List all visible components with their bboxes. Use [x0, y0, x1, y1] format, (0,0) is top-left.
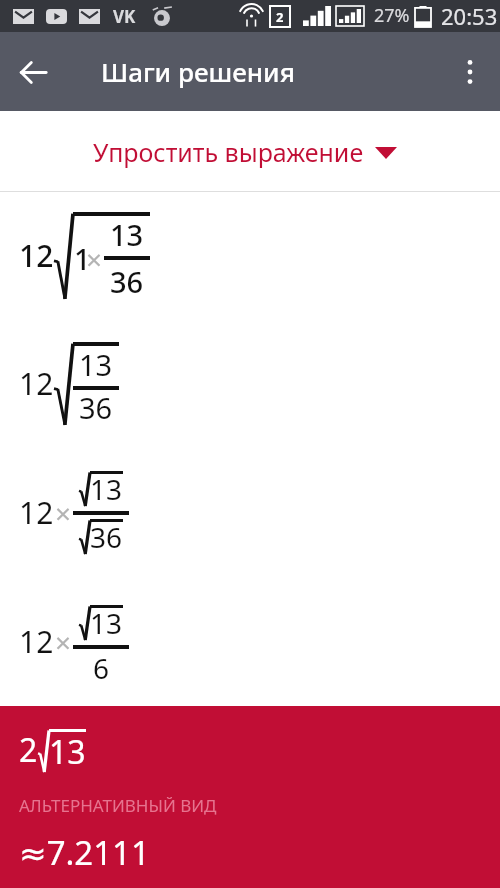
staticText: 13: [110, 215, 144, 254]
staticText: Упростить выражение: [93, 135, 364, 169]
staticText: 27%: [374, 3, 410, 28]
button[interactable]: 12: [0, 448, 500, 577]
staticText: 36: [110, 262, 144, 301]
button[interactable]: Упростить выражение: [0, 111, 500, 192]
button[interactable]: More options: [446, 48, 494, 96]
staticText: ≈7.2111: [19, 830, 150, 875]
staticText: 2: [276, 8, 284, 26]
staticText: Шаги решения: [101, 54, 295, 89]
staticText: ×: [55, 623, 72, 661]
staticText: 36: [79, 388, 113, 427]
button[interactable]: Back: [9, 48, 57, 96]
staticText: 12: [19, 621, 54, 662]
staticText: ×: [55, 494, 72, 532]
staticText: 2: [19, 728, 38, 772]
staticText: 36: [90, 518, 123, 556]
staticText: 12: [19, 363, 54, 404]
staticText: АЛЬТЕРНАТИВНЫЙ ВИД: [19, 794, 217, 817]
staticText: 12: [19, 235, 54, 276]
staticText: 13: [79, 345, 113, 384]
staticText: ×: [86, 240, 103, 278]
staticText: 6: [93, 649, 110, 687]
staticText: 1: [74, 239, 91, 278]
staticText: 20:53: [441, 1, 498, 31]
staticText: 13: [90, 470, 123, 508]
staticText: 13: [90, 604, 123, 642]
button[interactable]: 12: [0, 577, 500, 706]
button[interactable]: 12: [0, 192, 500, 320]
staticText: 12: [19, 492, 54, 533]
staticText: VK: [113, 5, 136, 28]
button[interactable]: 12: [0, 320, 500, 448]
staticText: 13: [49, 730, 86, 774]
